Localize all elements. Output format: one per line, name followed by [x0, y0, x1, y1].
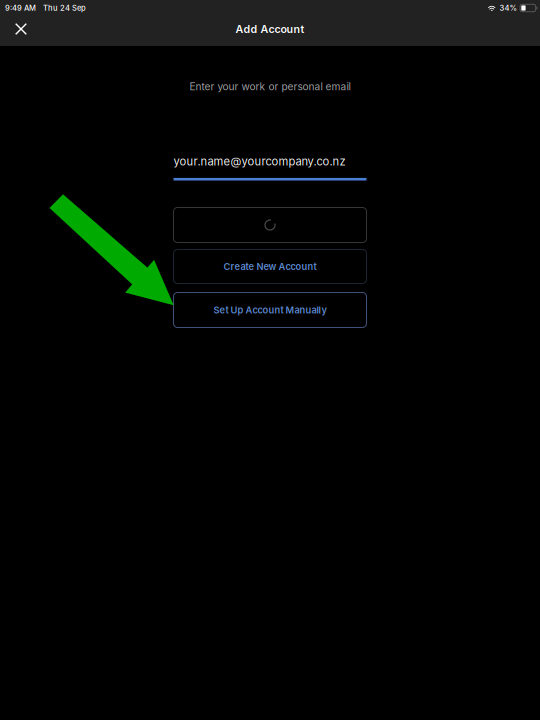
staticText: 9:49 AM — [5, 3, 36, 13]
staticText: Set Up Account Manually — [213, 304, 326, 316]
staticText: 34% — [500, 3, 518, 13]
button[interactable]: Set Up Account Manually — [173, 292, 366, 327]
staticText: your.name@yourcompany.co.nz — [173, 155, 345, 168]
button[interactable]: Create New Account — [173, 249, 366, 283]
staticText: Add Account — [235, 22, 304, 35]
staticText: Enter your work or personal email — [189, 80, 350, 93]
staticText: Thu 24 Sep — [43, 3, 86, 13]
button[interactable]: Close — [5, 16, 37, 42]
staticText: Create New Account — [223, 261, 316, 272]
button[interactable] — [173, 207, 366, 242]
